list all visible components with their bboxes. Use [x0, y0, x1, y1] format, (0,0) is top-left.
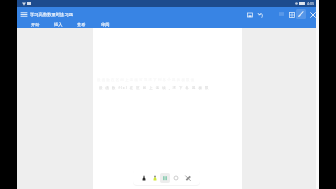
- staticText: 学习高数数量时练习题: [30, 12, 73, 17]
- button[interactable]: Pen yellow: [150, 173, 160, 183]
- button[interactable]: Close: [307, 9, 318, 20]
- button[interactable]: 审阅: [94, 21, 116, 28]
- button[interactable]: Grid: [286, 9, 297, 20]
- staticText: 查看: [77, 22, 86, 27]
- button[interactable]: Pen: [296, 9, 306, 19]
- button[interactable]: Eraser: [171, 173, 181, 183]
- button[interactable]: Highlighter: [160, 173, 170, 183]
- button[interactable]: Undo: [255, 9, 266, 20]
- staticText: 开始: [31, 22, 40, 27]
- button[interactable]: Menu: [18, 8, 30, 20]
- button[interactable]: Save: [244, 9, 255, 20]
- staticText: 4:05: [307, 1, 315, 6]
- button[interactable]: Disable ink: [183, 173, 193, 183]
- staticText: 插入: [54, 22, 63, 27]
- button[interactable]: Pen black: [139, 173, 149, 183]
- button[interactable]: 插入: [47, 21, 69, 28]
- button[interactable]: 开始: [24, 21, 46, 28]
- staticText: 审阅: [101, 22, 110, 27]
- staticText: 设 函 数 f(x) 在 区 间 上 连 续 , 求 下 各 题 极 限: [99, 85, 210, 90]
- button[interactable]: 查看: [70, 21, 92, 28]
